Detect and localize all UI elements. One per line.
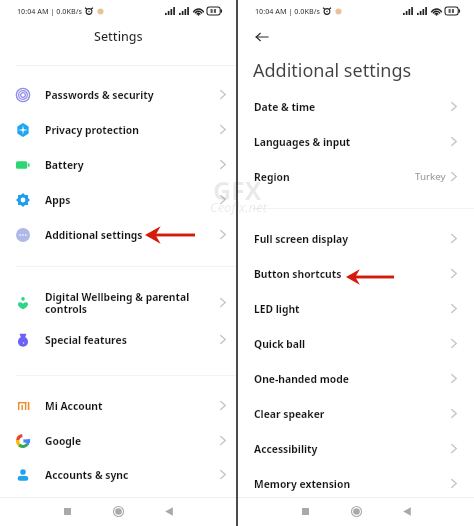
staticText: Languages & input (254, 135, 351, 149)
button[interactable]: Full screen display (238, 221, 474, 256)
staticText: Memory extension (254, 477, 351, 491)
staticText: Mi Account (45, 399, 103, 413)
staticText: Privacy protection (45, 123, 139, 137)
staticText: Full screen display (254, 232, 349, 246)
button[interactable]: Recents (293, 499, 317, 523)
button[interactable]: Languages & input (238, 124, 474, 159)
staticText: Battery (45, 158, 84, 172)
button[interactable]: Apps (0, 182, 236, 217)
button[interactable]: Accessibility (238, 431, 474, 466)
button[interactable]: Accounts & sync (0, 457, 236, 492)
button[interactable]: Clear speaker (238, 396, 474, 431)
staticText: Digital Wellbeing & parental controls (45, 290, 190, 316)
button[interactable]: Quick ball (238, 326, 474, 361)
button[interactable]: Home (106, 499, 130, 523)
staticText: Region (254, 170, 290, 184)
button[interactable]: Passwords & security (0, 77, 236, 112)
button[interactable]: Mi Account (0, 388, 236, 423)
button[interactable]: Region (238, 159, 474, 194)
button[interactable]: Battery (0, 147, 236, 182)
staticText: One-handed mode (254, 372, 349, 386)
button[interactable]: Back (395, 499, 419, 523)
button[interactable]: Privacy protection (0, 112, 236, 147)
staticText: Accessibility (254, 442, 318, 456)
staticText: Google (45, 434, 82, 448)
staticText: Apps (45, 193, 71, 207)
staticText: Additional settings (253, 58, 412, 83)
button[interactable]: Back (252, 27, 272, 47)
staticText: Button shortcuts (254, 267, 342, 281)
button[interactable]: Google (0, 423, 236, 458)
button[interactable]: Back (157, 499, 181, 523)
staticText: LED light (254, 302, 300, 316)
button[interactable]: Recents (55, 499, 79, 523)
button[interactable]: Date & time (238, 89, 474, 124)
button[interactable]: Memory extension (238, 466, 474, 501)
staticText: Accounts & sync (45, 468, 129, 482)
staticText: Additional settings (45, 228, 143, 242)
staticText: 10:04 AM | 0.0KB/s (255, 6, 320, 16)
staticText: Date & time (254, 100, 316, 114)
staticText: Settings (94, 28, 143, 45)
staticText: Clear speaker (254, 407, 325, 421)
staticText: GFX (213, 173, 262, 207)
button[interactable]: Home (344, 499, 368, 523)
staticText: Turkey (415, 170, 446, 183)
staticText: Special features (45, 333, 127, 347)
button[interactable]: LED light (238, 291, 474, 326)
button[interactable]: One-handed mode (238, 361, 474, 396)
button[interactable]: Special features (0, 322, 236, 357)
button[interactable]: Button shortcuts (238, 256, 474, 291)
button[interactable]: Additional settings (0, 217, 236, 252)
staticText: Ceofix.net (210, 198, 267, 216)
button[interactable]: Digital Wellbeing & parental controls (0, 285, 236, 320)
staticText: Quick ball (254, 337, 306, 351)
staticText: 10:04 AM | 0.0KB/s (17, 6, 82, 16)
staticText: Passwords & security (45, 88, 154, 102)
